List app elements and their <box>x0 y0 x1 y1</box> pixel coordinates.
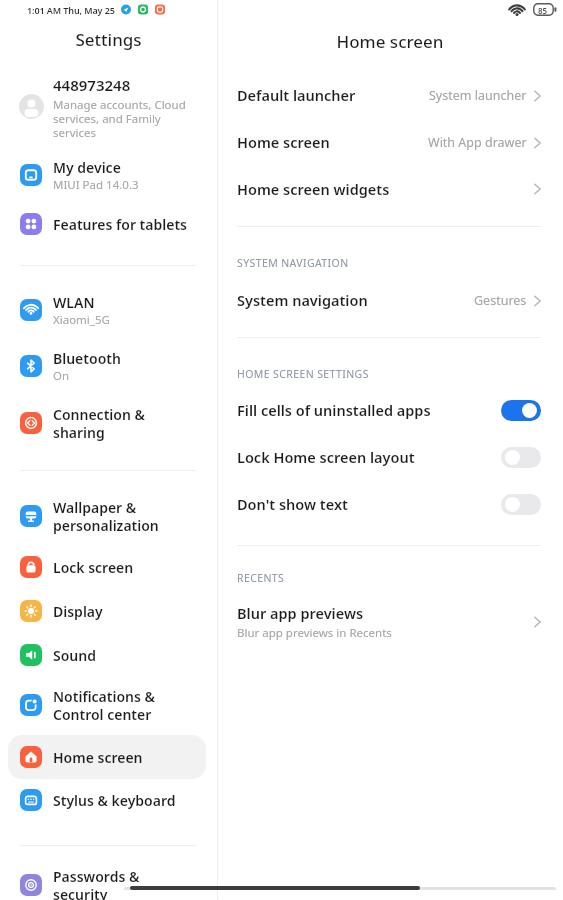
staticText: Blur app previews <box>237 603 364 623</box>
staticText: Notifications & Control center <box>53 687 155 724</box>
staticText: Gestures <box>474 292 527 309</box>
button[interactable] <box>501 494 541 515</box>
staticText: System launcher <box>429 87 527 104</box>
staticText: Don't show text <box>237 494 348 514</box>
button[interactable]: 448973248 <box>0 75 217 155</box>
staticText: Xiaomi_5G <box>53 312 110 328</box>
button[interactable]: Lock screen <box>0 539 217 595</box>
button[interactable]: Notifications & Control center <box>0 677 217 733</box>
staticText: Lock Home screen layout <box>237 447 415 467</box>
button[interactable]: Home screen widgets <box>237 166 541 212</box>
staticText: Manage accounts, Cloud services, and Fam… <box>53 97 186 141</box>
button[interactable]: Bluetooth <box>0 338 217 394</box>
button[interactable]: Default launcher <box>237 72 541 118</box>
button[interactable]: Passwords & security <box>0 857 217 900</box>
button[interactable] <box>501 447 541 468</box>
button[interactable]: Sound <box>0 627 217 683</box>
staticText: HOME SCREEN SETTINGS <box>237 367 369 381</box>
button[interactable]: Don't show text <box>237 481 541 527</box>
staticText: Sound <box>53 646 96 665</box>
staticText: Passwords & security <box>53 867 140 900</box>
button[interactable]: System navigation <box>237 277 541 323</box>
staticText: Home screen widgets <box>237 179 390 199</box>
staticText: Features for tablets <box>53 215 187 234</box>
staticText: 1:01 AM Thu, May 25 <box>27 4 115 16</box>
staticText: Home screen <box>53 748 143 767</box>
staticText: Home screen <box>217 30 563 53</box>
button[interactable]: Fill cells of uninstalled apps <box>237 387 541 433</box>
button[interactable]: WLAN <box>0 282 217 338</box>
staticText: Stylus & keyboard <box>53 791 176 810</box>
button[interactable]: Features for tablets <box>0 196 217 252</box>
button[interactable]: My device <box>0 147 217 203</box>
button[interactable]: Home screen <box>237 119 541 165</box>
staticText: Connection & sharing <box>53 405 145 442</box>
button[interactable]: Stylus & keyboard <box>0 772 217 828</box>
staticText: Display <box>53 602 103 621</box>
button[interactable]: Display <box>0 583 217 639</box>
staticText: Bluetooth <box>53 349 121 368</box>
staticText: Home screen <box>237 132 330 152</box>
staticText: Default launcher <box>237 85 356 105</box>
button[interactable]: Lock Home screen layout <box>237 434 541 480</box>
staticText: 85 <box>538 5 548 16</box>
staticText: Blur app previews in Recents <box>237 625 392 641</box>
button[interactable]: Wallpaper & personalization <box>0 488 217 544</box>
staticText: Settings <box>0 28 217 51</box>
button[interactable]: Blur app previews <box>237 599 541 645</box>
staticText: My device <box>53 158 121 177</box>
staticText: On <box>53 368 70 384</box>
staticText: System navigation <box>237 290 368 310</box>
button[interactable]: Home screen <box>0 729 217 785</box>
button[interactable]: Connection & sharing <box>0 395 217 451</box>
staticText: Fill cells of uninstalled apps <box>237 400 431 420</box>
staticText: RECENTS <box>237 571 285 585</box>
staticText: Lock screen <box>53 558 134 577</box>
staticText: SYSTEM NAVIGATION <box>237 256 349 270</box>
staticText: WLAN <box>53 293 95 312</box>
staticText: Wallpaper & personalization <box>53 498 159 535</box>
staticText: 448973248 <box>53 75 131 95</box>
staticText: MIUI Pad 14.0.3 <box>53 177 139 193</box>
button[interactable] <box>501 400 541 421</box>
staticText: With App drawer <box>428 134 527 151</box>
